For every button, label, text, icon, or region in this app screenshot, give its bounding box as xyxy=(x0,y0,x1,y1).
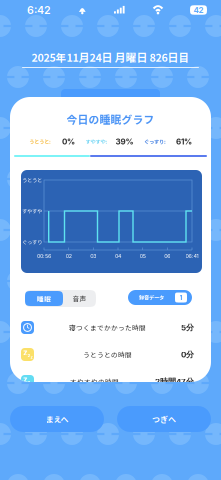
staticText: 今日の睡眠グラフ xyxy=(66,111,154,127)
staticText: すやすや xyxy=(22,207,42,215)
staticText: 03 xyxy=(90,253,96,259)
staticText: 02 xyxy=(66,253,72,259)
staticText: まえへ xyxy=(45,413,68,425)
staticText: 5分 xyxy=(181,322,194,333)
staticText: 00:56 xyxy=(37,253,51,259)
staticText: うとうとの時間 xyxy=(83,350,132,359)
staticText: 04 xyxy=(115,253,121,259)
button[interactable]: 寝つくまでかかった時間 xyxy=(10,314,211,341)
staticText: 05 xyxy=(140,253,146,259)
button[interactable]: z xyxy=(10,341,211,368)
staticText: 39% xyxy=(115,137,133,146)
button[interactable]: 録音データ xyxy=(128,290,192,305)
staticText: 0分 xyxy=(181,349,194,360)
staticText: 録音データ xyxy=(139,294,164,301)
staticText: z xyxy=(23,348,28,357)
staticText: うとうと xyxy=(22,176,42,184)
staticText: z xyxy=(27,352,30,359)
staticText: 6:42 xyxy=(27,3,51,16)
staticText: 06 xyxy=(164,253,170,259)
staticText: 1 xyxy=(179,293,182,302)
staticText: z xyxy=(23,375,28,384)
staticText: 42 xyxy=(193,5,203,15)
staticText: つぎへ xyxy=(152,413,176,425)
staticText: z xyxy=(27,379,30,386)
button[interactable]: 音声 xyxy=(63,291,96,306)
staticText: z xyxy=(30,355,32,360)
staticText: 61% xyxy=(176,137,192,146)
button[interactable]: 睡眠 xyxy=(25,291,63,306)
button[interactable]: まえへ xyxy=(10,406,104,432)
staticText: 音声 xyxy=(72,294,86,303)
staticText: ぐっすり xyxy=(22,238,42,246)
staticText: 2時間47分 xyxy=(155,376,194,387)
staticText: 0% xyxy=(62,137,75,146)
staticText: 06:41 xyxy=(185,253,198,259)
staticText: 2025年11月24日 月曜日 826日目 xyxy=(31,49,189,65)
staticText: うとうと: xyxy=(29,138,51,145)
staticText: 寝つくまでかかった時間 xyxy=(69,323,146,332)
staticText: すやすやの時間 xyxy=(70,377,119,386)
staticText: すやすや: xyxy=(85,138,107,145)
staticText: ぐっすり: xyxy=(144,138,166,145)
staticText: 睡眠 xyxy=(37,294,51,303)
button[interactable]: z xyxy=(10,368,211,395)
button[interactable]: つぎへ xyxy=(117,406,211,432)
